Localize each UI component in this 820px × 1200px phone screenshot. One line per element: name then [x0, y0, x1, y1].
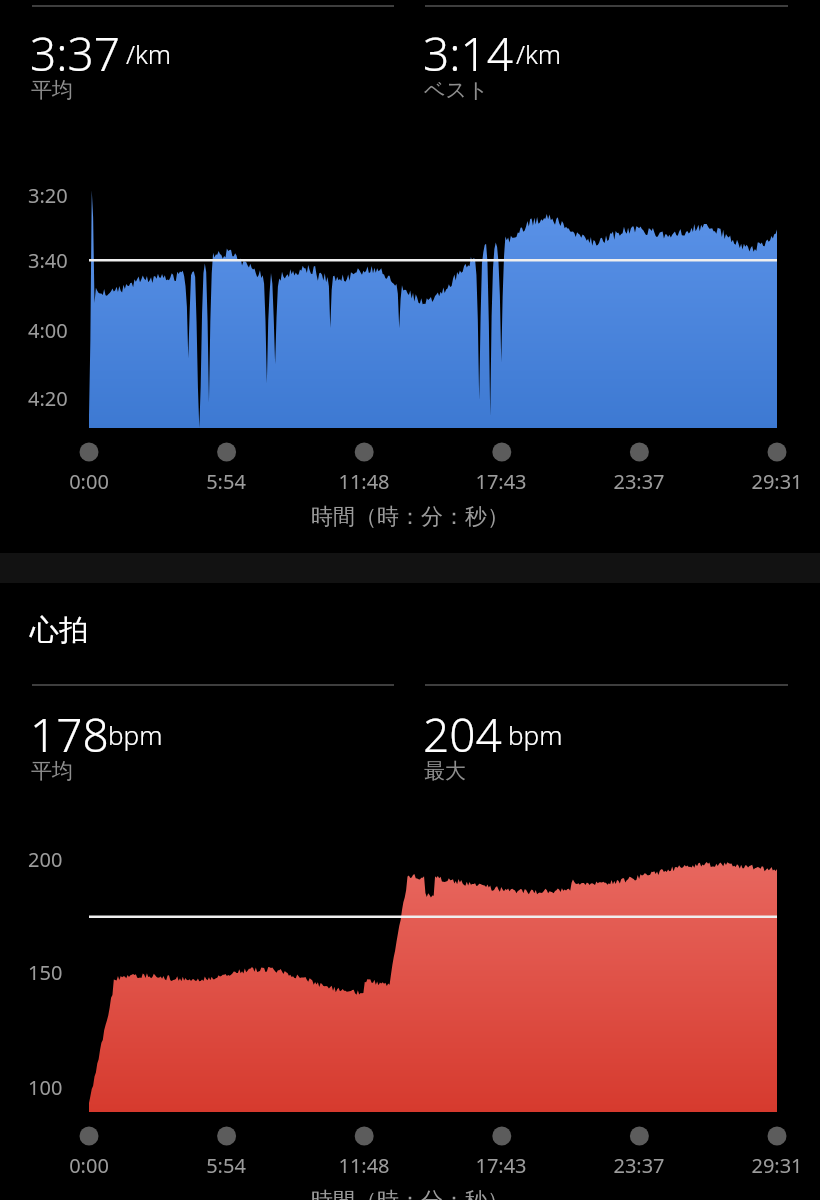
staticText: 時間（時：分：秒）: [0, 503, 820, 531]
button[interactable]: [425, 684, 788, 782]
staticText: 200: [28, 846, 63, 873]
staticText: 0:00: [44, 468, 134, 495]
staticText: 0:00: [44, 1152, 134, 1179]
staticText: 4:00: [28, 317, 68, 344]
staticText: 5:54: [181, 1152, 271, 1179]
staticText: 3:40: [28, 247, 68, 274]
staticText: /km: [516, 36, 562, 71]
staticText: 4:20: [28, 385, 68, 412]
staticText: 心拍: [30, 612, 88, 649]
staticText: 23:37: [594, 1152, 684, 1179]
staticText: 17:43: [456, 468, 546, 495]
staticText: 3:14: [423, 22, 514, 85]
staticText: 時間（時：分：秒）: [0, 1187, 820, 1200]
staticText: ベスト: [424, 77, 489, 103]
staticText: 204: [423, 703, 502, 766]
staticText: 11:48: [319, 1152, 409, 1179]
staticText: 最大: [424, 758, 466, 784]
staticText: 23:37: [594, 468, 684, 495]
staticText: /km: [126, 36, 172, 71]
button[interactable]: [32, 684, 394, 782]
staticText: 150: [28, 959, 63, 986]
staticText: 3:20: [28, 182, 68, 209]
staticText: bpm: [508, 717, 563, 752]
staticText: 178: [30, 703, 109, 766]
staticText: 平均: [31, 77, 73, 103]
button[interactable]: [425, 5, 788, 100]
staticText: 3:37: [30, 22, 121, 85]
staticText: 17:43: [456, 1152, 546, 1179]
staticText: 29:31: [732, 1152, 820, 1179]
staticText: 平均: [31, 758, 73, 784]
staticText: 100: [28, 1074, 63, 1101]
button[interactable]: [32, 5, 394, 100]
staticText: 5:54: [181, 468, 271, 495]
staticText: bpm: [108, 717, 163, 752]
staticText: 29:31: [732, 468, 820, 495]
staticText: 11:48: [319, 468, 409, 495]
